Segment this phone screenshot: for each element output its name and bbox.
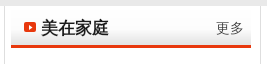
button[interactable]: 更多 xyxy=(216,20,244,38)
button[interactable]: Play xyxy=(24,22,36,32)
staticText: 更多 xyxy=(216,20,244,38)
staticText: 美在家庭 xyxy=(41,18,109,39)
